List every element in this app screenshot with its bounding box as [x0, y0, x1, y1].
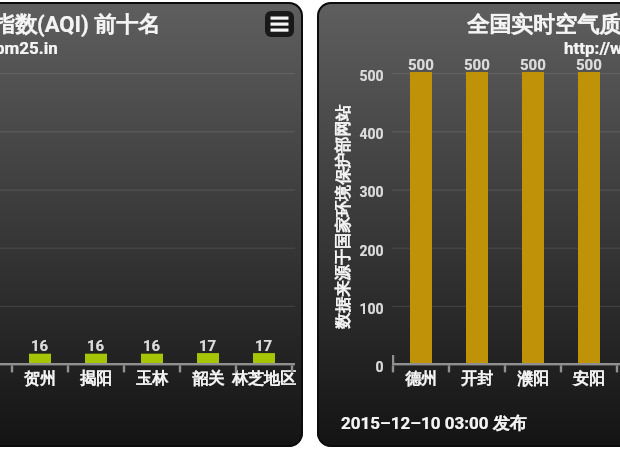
- button[interactable]: Menu: [265, 11, 294, 37]
- button[interactable]: Menu: [0, 2, 303, 447]
- button[interactable]: [317, 2, 620, 447]
